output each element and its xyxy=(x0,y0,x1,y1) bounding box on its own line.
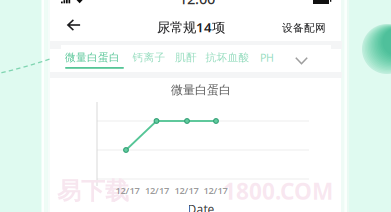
button[interactable]: 抗坏血酸 xyxy=(204,51,251,64)
staticText: 1800.COM xyxy=(223,176,333,206)
button[interactable]: 微量白蛋白 xyxy=(64,51,121,64)
button[interactable]: PH xyxy=(256,51,278,64)
staticText: 钙离子 xyxy=(132,51,165,64)
staticText: 12:00 xyxy=(179,0,215,8)
button[interactable]: 钙离子 xyxy=(130,51,168,64)
staticText: 微量白蛋白 xyxy=(171,83,231,97)
staticText: 12/17 xyxy=(115,184,139,197)
staticText: 12/17 xyxy=(174,184,198,197)
button[interactable]: Expand xyxy=(295,56,308,65)
button[interactable]: 肌酐 xyxy=(171,51,201,64)
staticText: Date xyxy=(187,201,214,212)
staticText: 12/17 xyxy=(145,184,169,197)
staticText: 肌酐 xyxy=(175,51,197,64)
staticText: 微量白蛋白 xyxy=(65,51,120,64)
staticText: 12/17 xyxy=(203,184,227,197)
button[interactable]: Back xyxy=(60,14,94,36)
staticText: 尿常规14项 xyxy=(157,18,225,36)
staticText: 设备配网 xyxy=(282,21,326,34)
staticText: 易下载 xyxy=(57,176,129,206)
button[interactable]: 设备配网 xyxy=(262,21,326,35)
staticText: PH xyxy=(260,50,274,65)
staticText: 抗坏血酸 xyxy=(205,51,249,64)
